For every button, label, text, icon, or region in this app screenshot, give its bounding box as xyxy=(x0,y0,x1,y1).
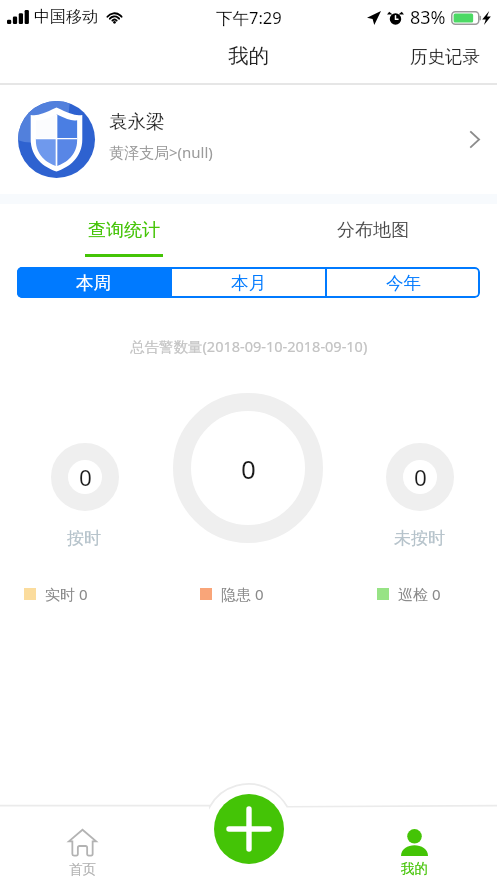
staticText: 巡检 0 xyxy=(398,584,441,604)
button[interactable]: 袁永梁 xyxy=(0,84,497,194)
button[interactable]: 历史记录 xyxy=(393,34,497,80)
button[interactable]: 今年 xyxy=(327,267,480,298)
button[interactable]: Add xyxy=(214,794,284,864)
staticText: 0 xyxy=(79,462,92,493)
staticText: 袁永梁 xyxy=(109,110,165,133)
button[interactable]: 本周 xyxy=(17,267,170,298)
staticText: 本周 xyxy=(76,272,111,294)
staticText: 首页 xyxy=(69,861,96,878)
staticText: 分布地图 xyxy=(337,219,409,242)
button[interactable]: 分布地图 xyxy=(248,204,497,260)
staticText: 总告警数量(2018-09-10-2018-09-10) xyxy=(130,336,368,356)
staticText: 隐患 0 xyxy=(221,584,264,604)
staticText: 本月 xyxy=(231,272,266,294)
staticText: 下午7:29 xyxy=(216,6,282,29)
button[interactable]: 我的 xyxy=(331,805,497,883)
button[interactable]: 本月 xyxy=(172,267,325,298)
staticText: 按时 xyxy=(67,528,101,549)
staticText: 黄泽支局>(null) xyxy=(109,142,213,162)
staticText: 今年 xyxy=(386,272,421,294)
staticText: 0 xyxy=(241,451,256,486)
button[interactable]: 查询统计 xyxy=(0,204,248,260)
button[interactable]: 隐患 0 xyxy=(200,584,264,604)
staticText: 实时 0 xyxy=(45,584,88,604)
staticText: 我的 xyxy=(228,43,269,69)
button[interactable]: 实时 0 xyxy=(24,584,88,604)
button[interactable]: 首页 xyxy=(0,805,165,883)
button[interactable]: 巡检 0 xyxy=(377,584,441,604)
staticText: 83% xyxy=(410,5,446,30)
staticText: 未按时 xyxy=(394,528,445,549)
staticText: 我的 xyxy=(401,860,428,877)
staticText: 历史记录 xyxy=(410,46,480,68)
staticText: 中国移动 xyxy=(34,7,98,27)
staticText: 0 xyxy=(414,462,427,493)
staticText: 查询统计 xyxy=(88,219,160,242)
